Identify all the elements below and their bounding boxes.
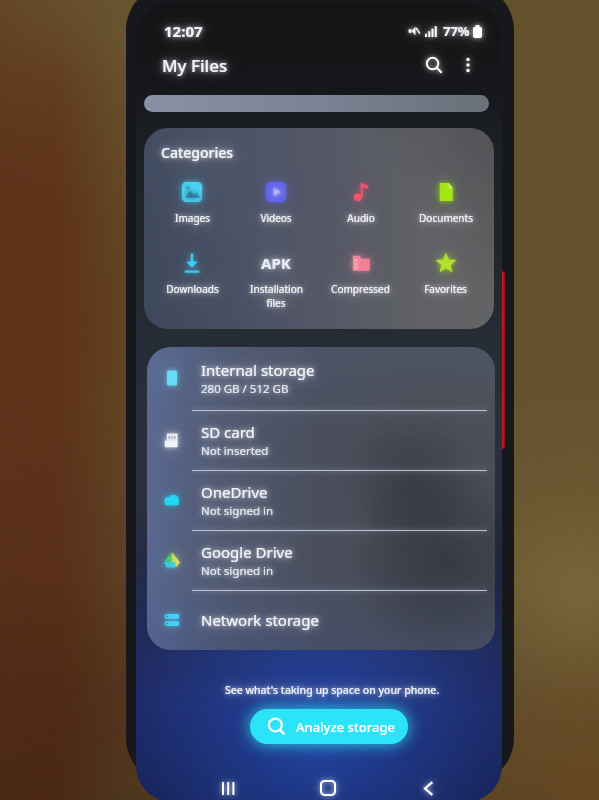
button[interactable]: More options [449, 46, 487, 84]
staticText: Network storage [201, 610, 319, 630]
button[interactable]: Internal storage [147, 347, 495, 411]
button[interactable]: Google Drive [147, 531, 495, 591]
button[interactable]: SD card [147, 411, 495, 471]
staticText: 77% [443, 22, 470, 40]
staticText: Installation [250, 282, 303, 296]
staticText: Videos [260, 211, 292, 225]
button[interactable]: Images [150, 179, 234, 225]
staticText: My Files [162, 54, 228, 77]
button[interactable]: Internal storage [147, 347, 495, 411]
button[interactable]: Back [410, 770, 446, 800]
staticText: SD card [201, 422, 255, 442]
button[interactable]: APK [234, 250, 318, 310]
button[interactable]: More options [449, 46, 487, 84]
staticText: Images [175, 211, 210, 225]
button[interactable]: Network storage [147, 591, 495, 650]
button[interactable]: Compressed [318, 250, 403, 296]
staticText: Not inserted [201, 443, 269, 459]
button[interactable]: Network storage [147, 591, 495, 650]
button[interactable]: Internal storage [147, 347, 495, 411]
button[interactable]: Home [310, 770, 346, 800]
button[interactable]: Downloads [150, 250, 234, 296]
button[interactable]: Compressed [318, 250, 403, 296]
button[interactable]: Favorites [403, 250, 488, 296]
staticText: Network storage [201, 610, 319, 630]
button[interactable]: Home [310, 770, 346, 800]
staticText: 280 GB / 512 GB [201, 381, 289, 397]
staticText: files [266, 296, 286, 310]
button[interactable]: Favorites [403, 250, 488, 296]
staticText: Documents [419, 211, 473, 225]
staticText: Favorites [424, 282, 467, 296]
staticText: Favorites [424, 282, 467, 296]
button[interactable]: Favorites [403, 250, 488, 296]
button[interactable]: Home [310, 770, 346, 800]
staticText: 12:07 [164, 21, 203, 41]
button[interactable]: Recents [210, 770, 246, 800]
button[interactable]: Google Drive [147, 531, 495, 591]
button[interactable]: Videos [234, 179, 318, 225]
button[interactable]: SD card [147, 411, 495, 471]
button[interactable]: SD card [147, 411, 495, 471]
button[interactable]: More options [449, 46, 487, 84]
button[interactable]: Analyze storage [267, 709, 408, 744]
staticText: My Files [162, 54, 228, 77]
staticText: APK [261, 253, 291, 273]
staticText: Images [175, 211, 210, 225]
button[interactable]: Recents [210, 770, 246, 800]
staticText: Compressed [331, 282, 390, 296]
staticText: 12:07 [164, 21, 203, 41]
button[interactable]: Network storage [147, 591, 495, 650]
staticText: Not signed in [201, 563, 274, 579]
button[interactable]: Recents [210, 770, 246, 800]
staticText: Audio [347, 211, 375, 225]
button[interactable]: Documents [403, 179, 488, 225]
staticText: See what's taking up space on your phone… [225, 683, 440, 697]
staticText: Downloads [166, 282, 219, 296]
staticText: See what's taking up space on your phone… [225, 683, 440, 697]
button[interactable]: Back [410, 770, 446, 800]
button[interactable]: APK [234, 250, 318, 310]
button[interactable]: Search [415, 46, 453, 84]
button[interactable]: OneDrive [147, 471, 495, 531]
button[interactable]: OneDrive [147, 471, 495, 531]
staticText: Audio [347, 211, 375, 225]
button[interactable]: Back [410, 770, 446, 800]
staticText: Audio [347, 211, 375, 225]
button[interactable]: APK [234, 250, 318, 310]
staticText: 77% [443, 22, 470, 40]
staticText: Downloads [166, 282, 219, 296]
staticText: Favorites [424, 282, 467, 296]
staticText: Categories [161, 143, 234, 162]
button[interactable]: Audio [318, 179, 403, 225]
staticText: Compressed [331, 282, 390, 296]
button[interactable]: Search [415, 46, 453, 84]
button[interactable]: Google Drive [147, 531, 495, 591]
button[interactable]: Videos [234, 179, 318, 225]
button[interactable]: Audio [318, 179, 403, 225]
button[interactable]: Compressed [318, 250, 403, 296]
staticText: Videos [260, 211, 292, 225]
button[interactable] [144, 95, 489, 112]
button[interactable]: Downloads [150, 250, 234, 296]
staticText: APK [261, 253, 291, 273]
button[interactable]: Downloads [150, 250, 234, 296]
staticText: My Files [162, 54, 228, 77]
staticText: OneDrive [201, 482, 268, 502]
button[interactable]: Documents [403, 179, 488, 225]
staticText: Videos [260, 211, 292, 225]
staticText: Analyze storage [296, 718, 395, 736]
staticText: Documents [419, 211, 473, 225]
button[interactable]: Documents [403, 179, 488, 225]
button[interactable]: OneDrive [147, 471, 495, 531]
staticText: Not signed in [201, 503, 274, 519]
button[interactable]: Images [150, 179, 234, 225]
button[interactable]: Videos [234, 179, 318, 225]
button[interactable]: Search [415, 46, 453, 84]
staticText: Categories [161, 143, 234, 162]
staticText: Installation [250, 282, 303, 296]
staticText: Not signed in [201, 503, 274, 519]
button[interactable]: Audio [318, 179, 403, 225]
button[interactable]: Images [150, 179, 234, 225]
staticText: Not signed in [201, 563, 274, 579]
